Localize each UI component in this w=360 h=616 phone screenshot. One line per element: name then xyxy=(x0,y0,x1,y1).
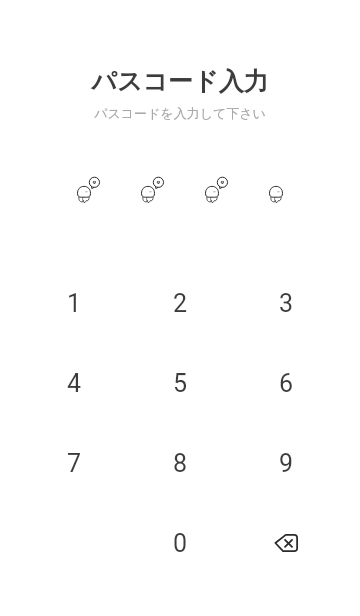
button[interactable]: 3 xyxy=(233,263,339,343)
staticText: 1 xyxy=(67,289,82,318)
button[interactable]: 0 xyxy=(127,503,233,583)
staticText: 7 xyxy=(67,449,82,478)
staticText: 9 xyxy=(279,449,294,478)
button[interactable]: Backspace xyxy=(233,503,339,583)
staticText: 6 xyxy=(279,369,294,398)
staticText: 2 xyxy=(173,289,188,318)
button[interactable]: 2 xyxy=(127,263,233,343)
button[interactable]: 5 xyxy=(127,343,233,423)
staticText: パスコードを入力して下さい xyxy=(94,105,266,121)
staticText: 3 xyxy=(279,289,294,318)
staticText: 0 xyxy=(173,529,188,558)
staticText: 5 xyxy=(173,369,188,398)
staticText: 4 xyxy=(67,369,82,398)
button[interactable]: 8 xyxy=(127,423,233,503)
button[interactable]: 9 xyxy=(233,423,339,503)
staticText: 8 xyxy=(173,449,188,478)
button[interactable]: 7 xyxy=(21,423,127,503)
button[interactable]: 1 xyxy=(21,263,127,343)
button[interactable]: 6 xyxy=(233,343,339,423)
staticText: パスコード入力 xyxy=(91,66,269,97)
button[interactable]: 4 xyxy=(21,343,127,423)
